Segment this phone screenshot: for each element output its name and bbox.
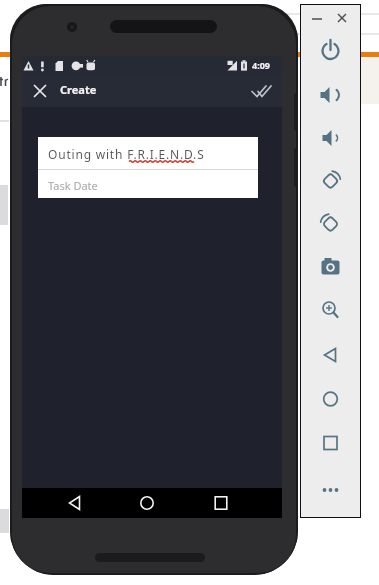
button[interactable] — [310, 298, 351, 322]
button[interactable] — [213, 495, 229, 511]
button[interactable] — [310, 39, 351, 63]
button[interactable] — [310, 83, 351, 107]
button[interactable] — [30, 81, 50, 101]
staticText: 4:09 — [252, 59, 270, 71]
staticText: Outing with F.R.I.E.N.D.S — [48, 146, 205, 162]
button[interactable] — [139, 495, 155, 511]
button[interactable] — [67, 495, 83, 511]
button[interactable] — [310, 255, 351, 279]
button[interactable] — [310, 169, 351, 193]
button[interactable] — [249, 82, 275, 102]
button[interactable]: Outing with F.R.I.E.N.D.S — [38, 137, 258, 169]
staticText: Create — [60, 82, 97, 97]
button[interactable] — [310, 5, 351, 29]
staticText: Task Date — [48, 178, 98, 193]
button[interactable] — [310, 387, 351, 411]
button[interactable] — [310, 343, 351, 367]
button[interactable] — [310, 126, 351, 150]
button[interactable] — [310, 478, 351, 502]
button[interactable] — [310, 212, 351, 236]
button[interactable] — [310, 431, 351, 455]
button[interactable]: Task Date — [38, 170, 258, 198]
